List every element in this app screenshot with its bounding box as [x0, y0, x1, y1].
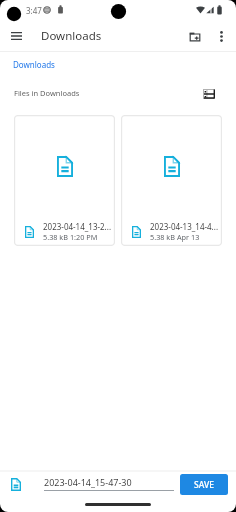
- button[interactable]: 2023-04-14_15-47-30: [44, 476, 174, 491]
- button[interactable]: 2023-04-14_13-2...: [14, 115, 115, 246]
- button[interactable]: 2023-04-13_14-4...: [121, 115, 222, 246]
- staticText: 5.38 kB 1:20 PM: [43, 232, 98, 242]
- staticText: Downloads: [41, 28, 102, 44]
- staticText: 2023-04-13_14-4...: [150, 221, 219, 232]
- button[interactable]: More options: [210, 25, 232, 47]
- button[interactable]: Downloads: [13, 59, 55, 70]
- staticText: 2023-04-14_15-47-30: [44, 476, 132, 488]
- staticText: 2023-04-14_13-2...: [43, 221, 112, 232]
- button[interactable]: Menu: [5, 25, 27, 47]
- button[interactable]: New folder: [183, 25, 206, 48]
- button[interactable]: Switch view: [199, 84, 218, 103]
- staticText: 3:47: [26, 5, 42, 16]
- button[interactable]: SAVE: [180, 474, 228, 495]
- staticText: SAVE: [194, 479, 214, 491]
- staticText: Files in Downloads: [14, 88, 80, 98]
- staticText: 5.38 kB Apr 13: [150, 232, 200, 242]
- staticText: Downloads: [13, 59, 55, 70]
